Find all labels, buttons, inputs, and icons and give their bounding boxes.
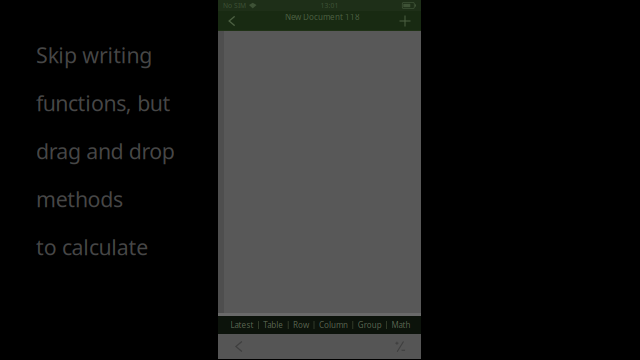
button[interactable]: Row bbox=[289, 315, 313, 334]
button[interactable]: Back bbox=[215, 11, 249, 31]
staticText: Latest bbox=[230, 320, 253, 330]
staticText: Math bbox=[391, 320, 410, 330]
staticText: to calculate bbox=[36, 233, 148, 261]
staticText: Group bbox=[358, 320, 382, 330]
button[interactable]: Add bbox=[388, 11, 422, 31]
staticText: Skip writing bbox=[36, 41, 152, 69]
staticText: Column bbox=[319, 320, 348, 330]
button[interactable]: Group bbox=[354, 315, 386, 334]
staticText: Table bbox=[263, 320, 283, 330]
staticText: methods bbox=[36, 185, 123, 213]
staticText: functions, but bbox=[36, 89, 170, 117]
button[interactable]: Math bbox=[387, 315, 414, 334]
button[interactable]: Column bbox=[315, 315, 352, 334]
staticText: Row bbox=[293, 320, 309, 330]
staticText: 13:01 bbox=[320, 1, 338, 10]
staticText: New Document 118 bbox=[285, 12, 360, 22]
staticText: drag and drop bbox=[36, 137, 175, 165]
staticText: No SIM bbox=[223, 1, 246, 10]
button[interactable]: Latest bbox=[226, 315, 257, 334]
button[interactable]: Table bbox=[259, 315, 287, 334]
